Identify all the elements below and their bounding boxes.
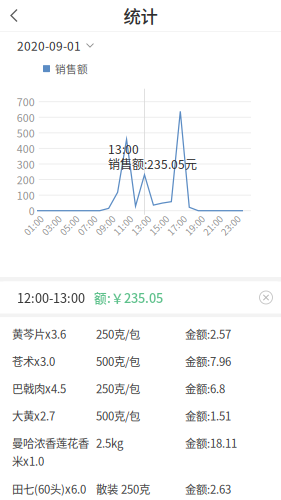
staticText: 黄芩片x3.6 [12, 325, 66, 342]
staticText: 金额:1.51 [185, 407, 231, 424]
staticText: 金额:2.57 [185, 325, 231, 342]
staticText: 200 [17, 172, 35, 187]
button[interactable]: 关闭 [253, 284, 279, 310]
staticText: 13:00 [130, 219, 153, 233]
staticText: 米x1.0 [12, 453, 44, 469]
staticText: 250克/包 [96, 325, 140, 342]
staticText: 13:00 [108, 140, 139, 157]
staticText: 600 [17, 109, 35, 125]
staticText: 12:00-13:00 [17, 288, 85, 307]
staticText: 2.5kg [96, 435, 123, 451]
button[interactable]: 返回 [0, 2, 30, 28]
staticText: 09:00 [94, 219, 117, 233]
staticText: 21:00 [202, 219, 225, 233]
staticText: 2020-09-01 [17, 37, 81, 54]
staticText: 500克/包 [96, 407, 140, 424]
staticText: 250克/包 [96, 380, 140, 396]
staticText: 23:00 [219, 219, 242, 233]
staticText: 苍术x3.0 [12, 353, 55, 369]
staticText: 销售额:235.05元 [108, 155, 197, 172]
staticText: 100 [17, 187, 35, 203]
button[interactable]: 2020-09-01 [0, 32, 281, 60]
staticText: 11:00 [112, 219, 135, 233]
staticText: 金额:2.63 [185, 481, 231, 497]
staticText: 金额:18.11 [185, 435, 237, 451]
staticText: 田七(60头)x6.0 [12, 481, 86, 497]
staticText: 曼哈浓香莲花香 [12, 435, 89, 451]
staticText: 额:￥235.05 [85, 288, 163, 307]
staticText: 巴戟肉x4.5 [12, 380, 66, 396]
staticText: 400 [17, 141, 35, 156]
staticText: 03:00 [40, 219, 63, 233]
staticText: 500克/包 [96, 353, 140, 369]
staticText: 金额:6.8 [185, 380, 225, 396]
staticText: 500 [17, 125, 35, 140]
staticText: 15:00 [148, 219, 171, 233]
staticText: 销售额 [55, 61, 88, 76]
staticText: 01:00 [22, 219, 45, 233]
staticText: 大黄x2.7 [12, 407, 55, 424]
staticText: 17:00 [166, 219, 189, 233]
staticText: 300 [17, 156, 35, 172]
staticText: 19:00 [184, 219, 207, 233]
staticText: 散装 250克 [96, 481, 150, 497]
staticText: 金额:7.96 [185, 353, 231, 369]
staticText: 05:00 [58, 219, 81, 233]
staticText: 0 [29, 203, 35, 218]
staticText: 统计 [123, 3, 157, 28]
staticText: 07:00 [76, 219, 99, 233]
staticText: 700 [17, 94, 35, 109]
